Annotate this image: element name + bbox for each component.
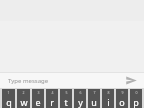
button[interactable]: 5: [60, 89, 72, 108]
button[interactable]: 3: [32, 89, 44, 108]
staticText: i: [107, 96, 110, 108]
staticText: 1: [7, 90, 10, 95]
staticText: r: [50, 96, 54, 108]
button[interactable]: 1: [2, 89, 15, 108]
staticText: 4: [51, 90, 54, 95]
staticText: w: [20, 96, 28, 108]
staticText: 6: [79, 90, 82, 95]
staticText: 3: [37, 90, 40, 95]
staticText: 9: [121, 90, 124, 95]
staticText: 7: [93, 90, 96, 95]
staticText: 0: [135, 90, 138, 95]
staticText: 5: [65, 90, 68, 95]
button[interactable]: Type message: [0, 73, 118, 88]
staticText: y: [78, 96, 83, 108]
button[interactable]: 0: [130, 89, 142, 108]
button[interactable]: Send: [118, 73, 144, 88]
staticText: t: [64, 96, 68, 108]
staticText: 2: [22, 90, 25, 95]
button[interactable]: 8: [102, 89, 114, 108]
button[interactable]: 6: [74, 89, 86, 108]
staticText: Type message: [8, 77, 49, 85]
button[interactable]: 9: [116, 89, 128, 108]
button[interactable]: 2: [17, 89, 30, 108]
staticText: q: [6, 96, 12, 108]
staticText: p: [133, 96, 139, 108]
button[interactable]: 4: [46, 89, 58, 108]
staticText: 8: [107, 90, 110, 95]
staticText: u: [91, 96, 97, 108]
staticText: o: [119, 96, 125, 108]
button[interactable]: 7: [88, 89, 100, 108]
staticText: e: [35, 96, 41, 108]
